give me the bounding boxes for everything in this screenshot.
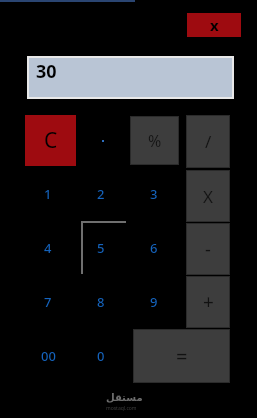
staticText: 30: [36, 59, 57, 84]
button[interactable]: x: [187, 13, 241, 37]
button[interactable]: C: [25, 115, 76, 166]
button[interactable]: 9: [132, 288, 176, 316]
staticText: مستقل: [106, 392, 143, 404]
staticText: 3: [150, 185, 158, 203]
button[interactable]: 00: [26, 342, 70, 370]
button[interactable]: 5: [79, 234, 123, 262]
staticText: X: [203, 185, 213, 208]
staticText: 0: [97, 347, 105, 365]
staticText: mostaql.com: [106, 405, 137, 412]
staticText: 8: [97, 293, 105, 311]
staticText: 00: [41, 347, 56, 365]
staticText: 6: [150, 239, 158, 257]
button[interactable]: +: [186, 276, 230, 328]
button[interactable]: 1: [26, 180, 70, 208]
staticText: =: [176, 343, 188, 370]
button[interactable]: 6: [132, 234, 176, 262]
staticText: 9: [150, 293, 158, 311]
staticText: C: [44, 126, 58, 155]
staticText: 7: [44, 293, 52, 311]
staticText: x: [210, 15, 219, 35]
staticText: 4: [44, 239, 52, 257]
button[interactable]: %: [130, 116, 179, 165]
staticText: 5: [97, 239, 105, 257]
button[interactable]: 2: [79, 180, 123, 208]
button[interactable]: -: [186, 223, 230, 275]
button[interactable]: =: [133, 329, 230, 383]
button[interactable]: 4: [26, 234, 70, 262]
button[interactable]: X: [186, 170, 230, 222]
button[interactable]: [90, 128, 116, 154]
staticText: +: [203, 289, 214, 315]
staticText: -: [205, 237, 211, 262]
staticText: 1: [44, 185, 52, 203]
button[interactable]: 8: [79, 288, 123, 316]
staticText: %: [148, 130, 162, 152]
staticText: 2: [97, 185, 105, 203]
button[interactable]: /: [186, 115, 230, 168]
button[interactable]: 0: [79, 342, 123, 370]
button[interactable]: 7: [26, 288, 70, 316]
button[interactable]: 3: [132, 180, 176, 208]
staticText: /: [205, 130, 212, 153]
